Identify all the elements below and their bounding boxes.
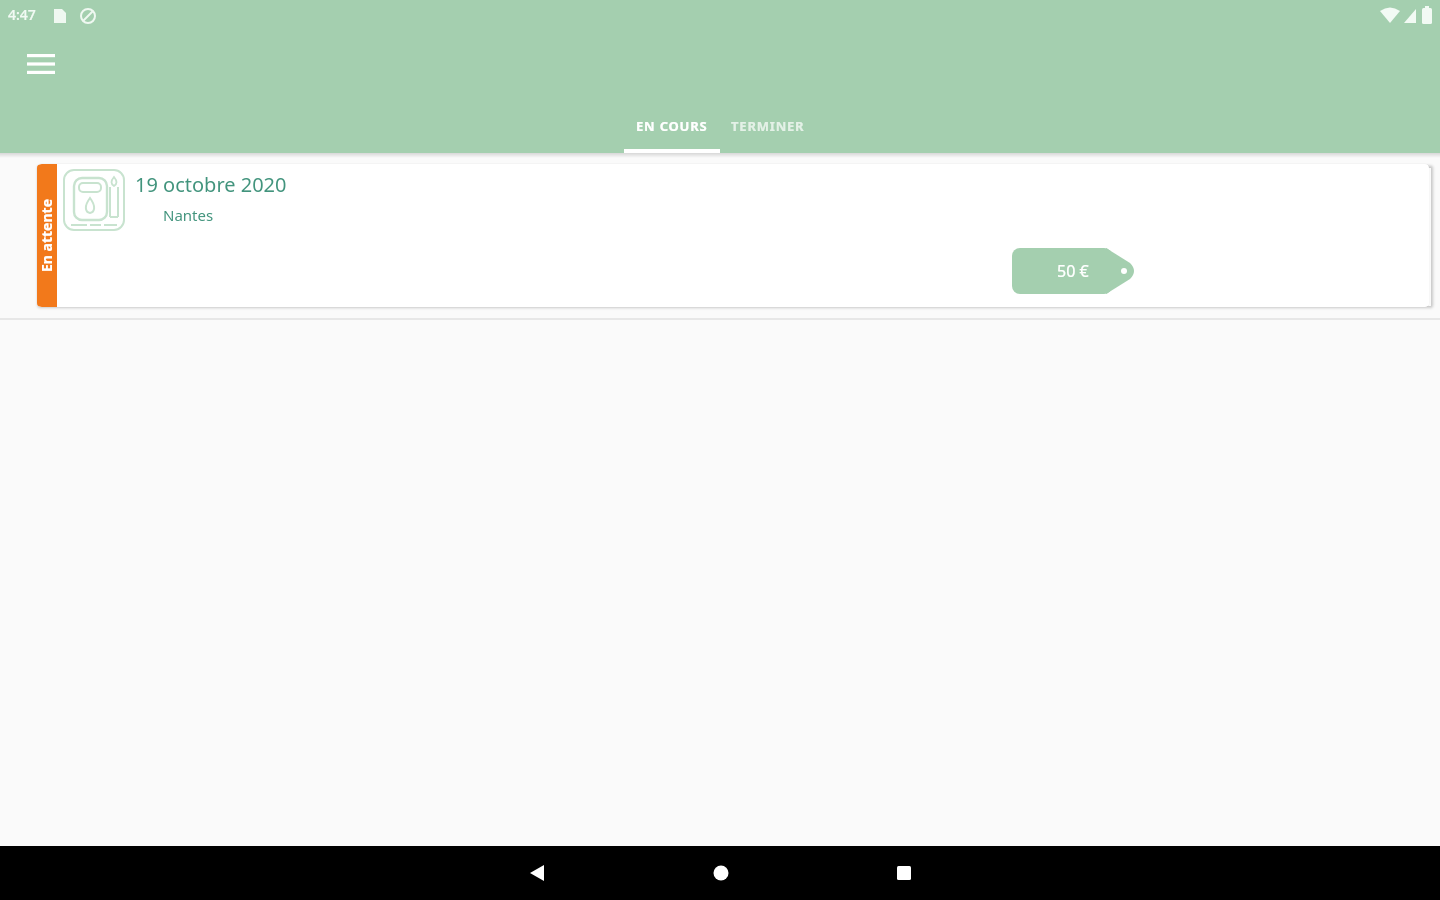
staticText: 19 octobre 2020 — [135, 171, 287, 198]
button[interactable]: En attente — [37, 164, 1429, 307]
button[interactable] — [880, 849, 928, 897]
staticText: 50 € — [1057, 260, 1089, 282]
button[interactable] — [17, 40, 65, 88]
button[interactable]: TERMINER — [720, 99, 816, 153]
button[interactable] — [697, 849, 745, 897]
staticText: En attente — [37, 165, 55, 305]
staticText: 4:47 — [8, 5, 36, 24]
button[interactable]: 50 € — [1012, 248, 1138, 294]
staticText: Nantes — [163, 205, 214, 225]
staticText: EN COURS — [636, 117, 708, 135]
staticText: TERMINER — [731, 117, 805, 135]
button[interactable] — [513, 849, 561, 897]
button[interactable]: EN COURS — [624, 99, 720, 153]
